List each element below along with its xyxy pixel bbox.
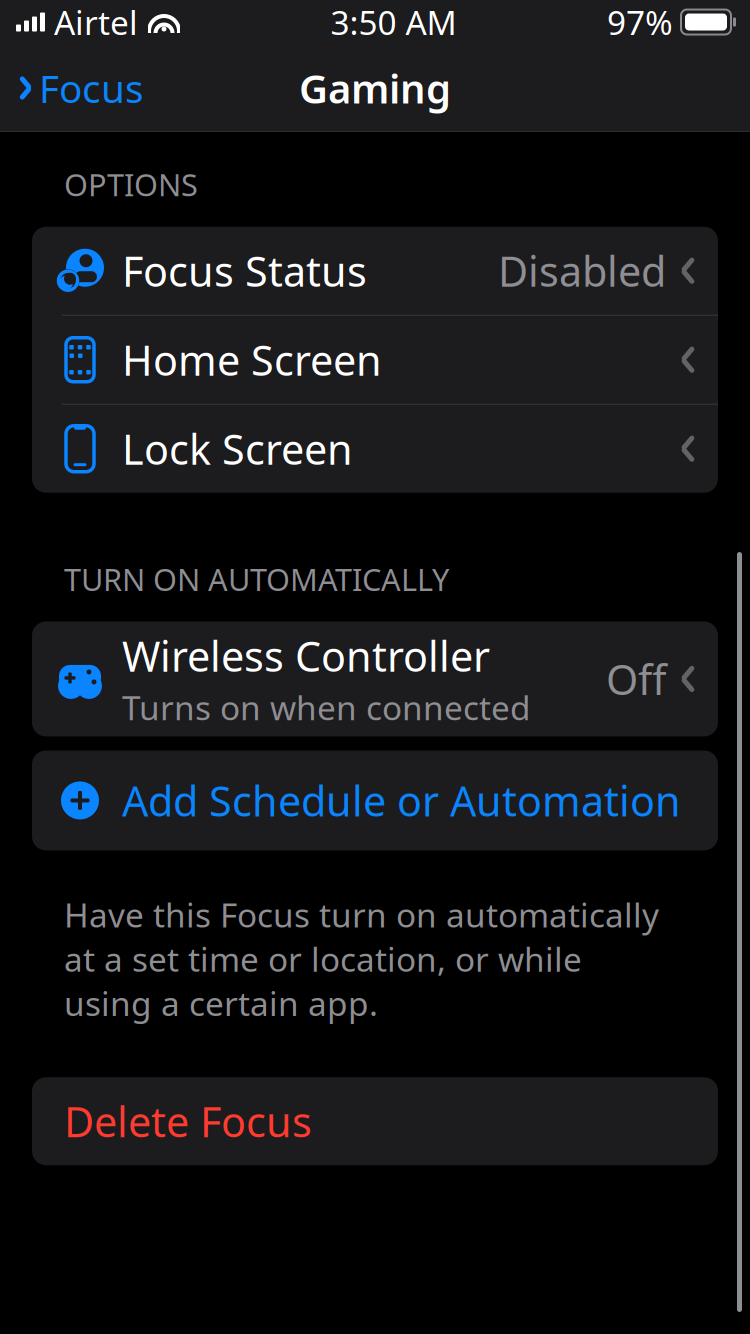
staticText: Off [606, 651, 666, 706]
button[interactable]: Focus [0, 58, 156, 118]
button[interactable]: Lock Screen [32, 405, 718, 493]
button[interactable]: Focus Status [32, 227, 718, 315]
staticText: TURN ON AUTOMATICALLY [64, 559, 449, 599]
staticText: Focus [39, 62, 144, 114]
staticText: Turns on when connected [122, 685, 531, 730]
staticText: OPTIONS [64, 164, 198, 205]
staticText: Have this Focus turn on automatically at… [64, 892, 659, 1025]
staticText: Focus Status [122, 243, 367, 298]
staticText: Airtel [54, 0, 138, 44]
button[interactable]: Add Schedule or Automation [32, 750, 718, 850]
staticText: Wireless Controller [122, 628, 490, 683]
staticText: Add Schedule or Automation [122, 773, 681, 828]
button[interactable]: Wireless Controller [32, 621, 718, 736]
staticText: Gaming [299, 61, 451, 114]
staticText: Delete Focus [64, 1094, 312, 1149]
staticText: Home Screen [122, 332, 382, 387]
staticText: 97% [607, 0, 673, 44]
button[interactable]: Delete Focus [32, 1077, 718, 1165]
staticText: Lock Screen [122, 421, 353, 476]
staticText: 3:50 AM [330, 0, 456, 44]
button[interactable]: Home Screen [32, 316, 718, 404]
staticText: Disabled [498, 243, 666, 298]
